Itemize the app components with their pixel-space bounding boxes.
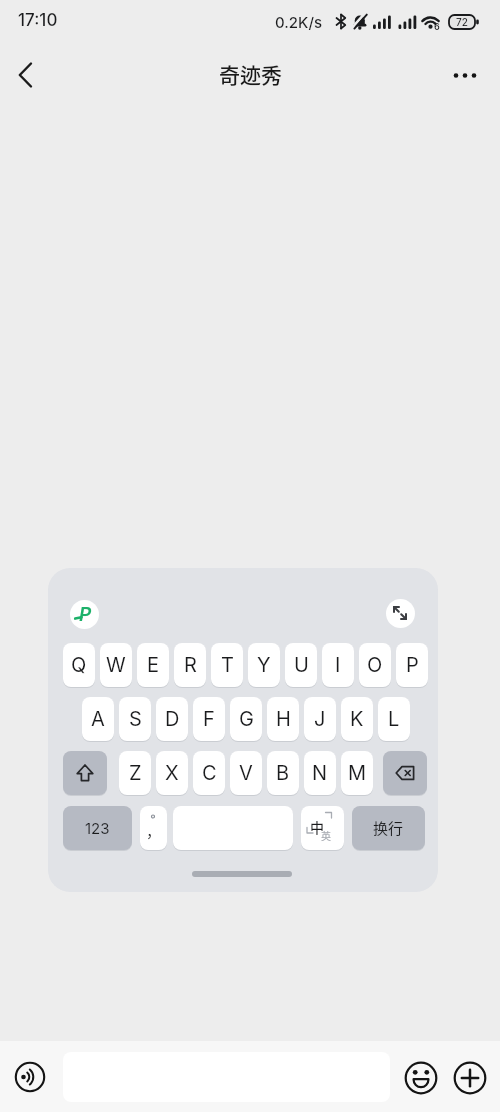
button[interactable]: 中: [301, 806, 344, 850]
button[interactable]: [14, 1061, 46, 1093]
staticText: C: [202, 761, 217, 785]
button[interactable]: M: [341, 751, 373, 795]
button[interactable]: 123: [63, 806, 132, 850]
button[interactable]: I: [322, 643, 354, 687]
button[interactable]: [383, 751, 427, 795]
button[interactable]: B: [267, 751, 299, 795]
button[interactable]: 换行: [352, 806, 425, 850]
button[interactable]: A: [82, 697, 114, 741]
staticText: 换行: [373, 817, 404, 839]
staticText: X: [165, 761, 179, 785]
button[interactable]: Y: [248, 643, 280, 687]
staticText: 17:10: [18, 10, 58, 31]
staticText: K: [350, 707, 364, 731]
staticText: 中: [310, 817, 324, 837]
button[interactable]: [63, 751, 107, 795]
button[interactable]: C: [193, 751, 225, 795]
staticText: 6: [434, 21, 440, 32]
button[interactable]: U: [285, 643, 317, 687]
staticText: 奇迹秀: [219, 59, 282, 89]
staticText: N: [312, 761, 328, 785]
staticText: J: [314, 707, 326, 731]
button[interactable]: R: [174, 643, 206, 687]
staticText: G: [239, 707, 254, 731]
button[interactable]: G: [230, 697, 262, 741]
button[interactable]: O: [359, 643, 391, 687]
button[interactable]: [404, 1061, 438, 1095]
staticText: T: [221, 653, 234, 677]
button[interactable]: F: [193, 697, 225, 741]
staticText: P: [79, 603, 92, 626]
staticText: Y: [257, 653, 271, 677]
staticText: A: [91, 707, 105, 731]
button[interactable]: Z: [119, 751, 151, 795]
staticText: O: [367, 653, 383, 677]
staticText: P: [406, 653, 419, 677]
button[interactable]: [453, 1061, 487, 1095]
button[interactable]: V: [230, 751, 262, 795]
staticText: ，: [146, 820, 162, 842]
staticText: 123: [85, 819, 110, 837]
staticText: E: [147, 653, 160, 677]
staticText: L: [388, 707, 400, 731]
staticText: D: [165, 707, 180, 731]
staticText: V: [239, 761, 253, 785]
button[interactable]: [444, 55, 488, 95]
button[interactable]: Q: [63, 643, 95, 687]
staticText: H: [276, 707, 291, 731]
staticText: Z: [129, 761, 142, 785]
staticText: F: [203, 707, 215, 731]
button[interactable]: [173, 806, 293, 850]
staticText: 英: [321, 828, 331, 842]
button[interactable]: X: [156, 751, 188, 795]
button[interactable]: T: [211, 643, 243, 687]
button[interactable]: E: [137, 643, 169, 687]
button[interactable]: P: [70, 600, 99, 629]
button[interactable]: ，: [140, 806, 167, 850]
staticText: Q: [71, 653, 87, 677]
button[interactable]: H: [267, 697, 299, 741]
staticText: 72: [449, 16, 475, 30]
button[interactable]: P: [396, 643, 428, 687]
staticText: W: [106, 653, 126, 677]
button[interactable]: S: [119, 697, 151, 741]
button[interactable]: [386, 599, 415, 628]
button[interactable]: [6, 55, 46, 95]
button[interactable]: L: [378, 697, 410, 741]
staticText: B: [276, 761, 290, 785]
button[interactable]: D: [156, 697, 188, 741]
button[interactable]: W: [100, 643, 132, 687]
staticText: R: [184, 653, 197, 677]
staticText: S: [129, 707, 142, 731]
button[interactable]: N: [304, 751, 336, 795]
staticText: U: [294, 653, 309, 677]
staticText: 0.2K/s: [275, 13, 323, 31]
button[interactable]: J: [304, 697, 336, 741]
button[interactable]: K: [341, 697, 373, 741]
staticText: M: [348, 761, 367, 785]
staticText: I: [335, 653, 341, 677]
